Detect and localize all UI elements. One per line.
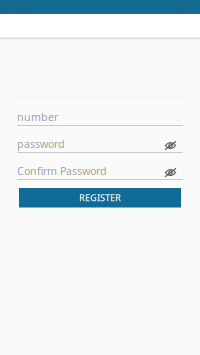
button[interactable]: number (17, 99, 183, 126)
button[interactable]: password (17, 126, 183, 153)
staticText: ▮ ▮ (181, 3, 191, 11)
staticText: Confirm Password (17, 164, 107, 178)
staticText: password (17, 137, 65, 151)
staticText: number (17, 110, 58, 124)
button[interactable]: Confirm Password (17, 153, 183, 180)
button[interactable]: REGISTER (17, 188, 183, 207)
staticText: REGISTER (79, 192, 121, 204)
staticText: 10:04 (9, 2, 35, 12)
